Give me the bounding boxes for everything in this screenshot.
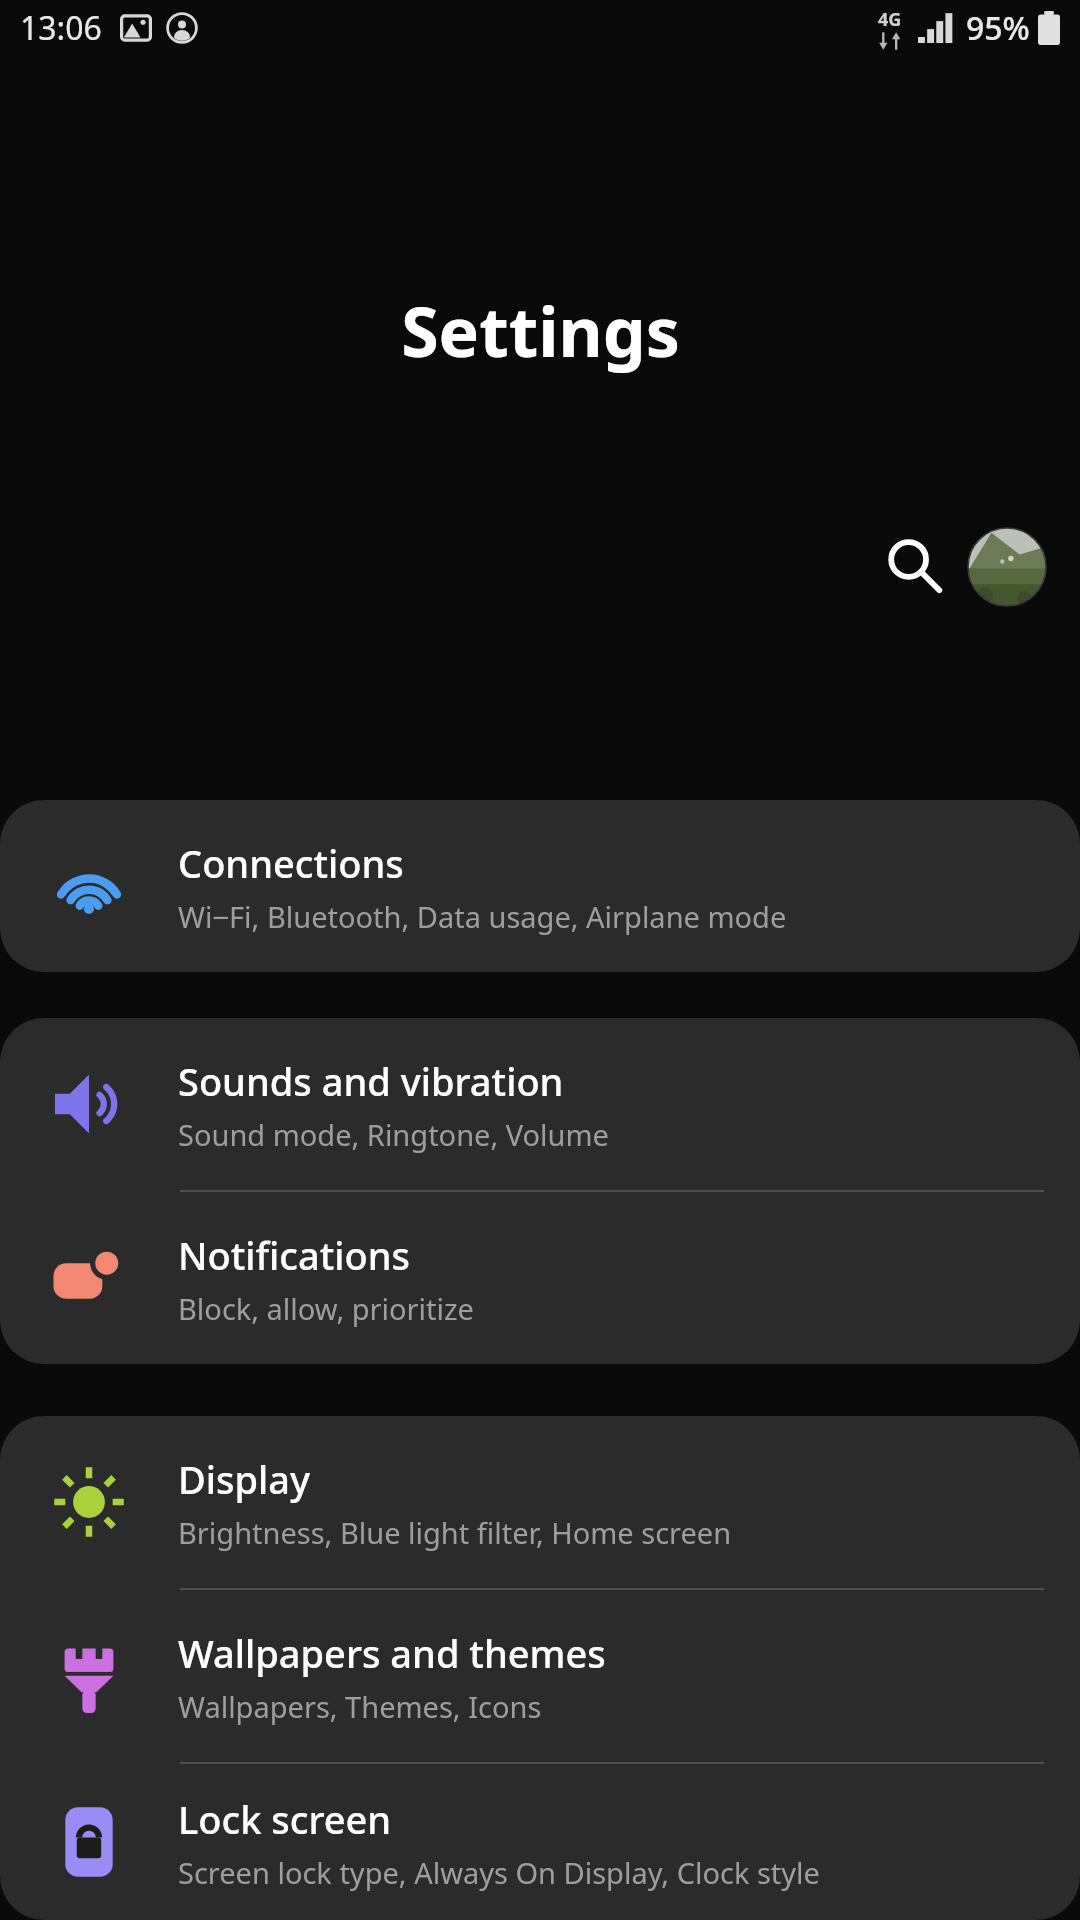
staticText: Brightness, Blue light filter, Home scre… <box>178 1513 732 1552</box>
staticText: Wallpapers and themes <box>178 1627 606 1679</box>
staticText: 13:06 <box>20 6 102 50</box>
button[interactable]: Sounds and vibration <box>0 1018 1080 1190</box>
button[interactable]: Connections <box>0 800 1080 972</box>
staticText: Notifications <box>178 1229 411 1281</box>
staticText: Sounds and vibration <box>178 1055 564 1107</box>
staticText: Sound mode, Ringtone, Volume <box>178 1115 609 1154</box>
staticText: Display <box>178 1453 311 1505</box>
staticText: Connections <box>178 837 404 889</box>
button[interactable]: Wallpapers and themes <box>0 1590 1080 1762</box>
staticText: Wi‒Fi, Bluetooth, Data usage, Airplane m… <box>178 897 787 936</box>
button[interactable]: Notifications <box>0 1192 1080 1364</box>
staticText: 4G <box>878 7 902 32</box>
staticText: Lock screen <box>178 1793 392 1845</box>
button[interactable]: Search <box>872 524 958 610</box>
button[interactable]: Account profile <box>964 524 1050 610</box>
staticText: Block, allow, prioritize <box>178 1289 474 1328</box>
staticText: Settings <box>401 284 680 377</box>
staticText: Screen lock type, Always On Display, Clo… <box>178 1853 820 1892</box>
staticText: 95% <box>966 6 1030 50</box>
button[interactable]: Lock screen <box>0 1764 1080 1920</box>
button[interactable]: Display <box>0 1416 1080 1588</box>
staticText: Wallpapers, Themes, Icons <box>178 1687 542 1726</box>
